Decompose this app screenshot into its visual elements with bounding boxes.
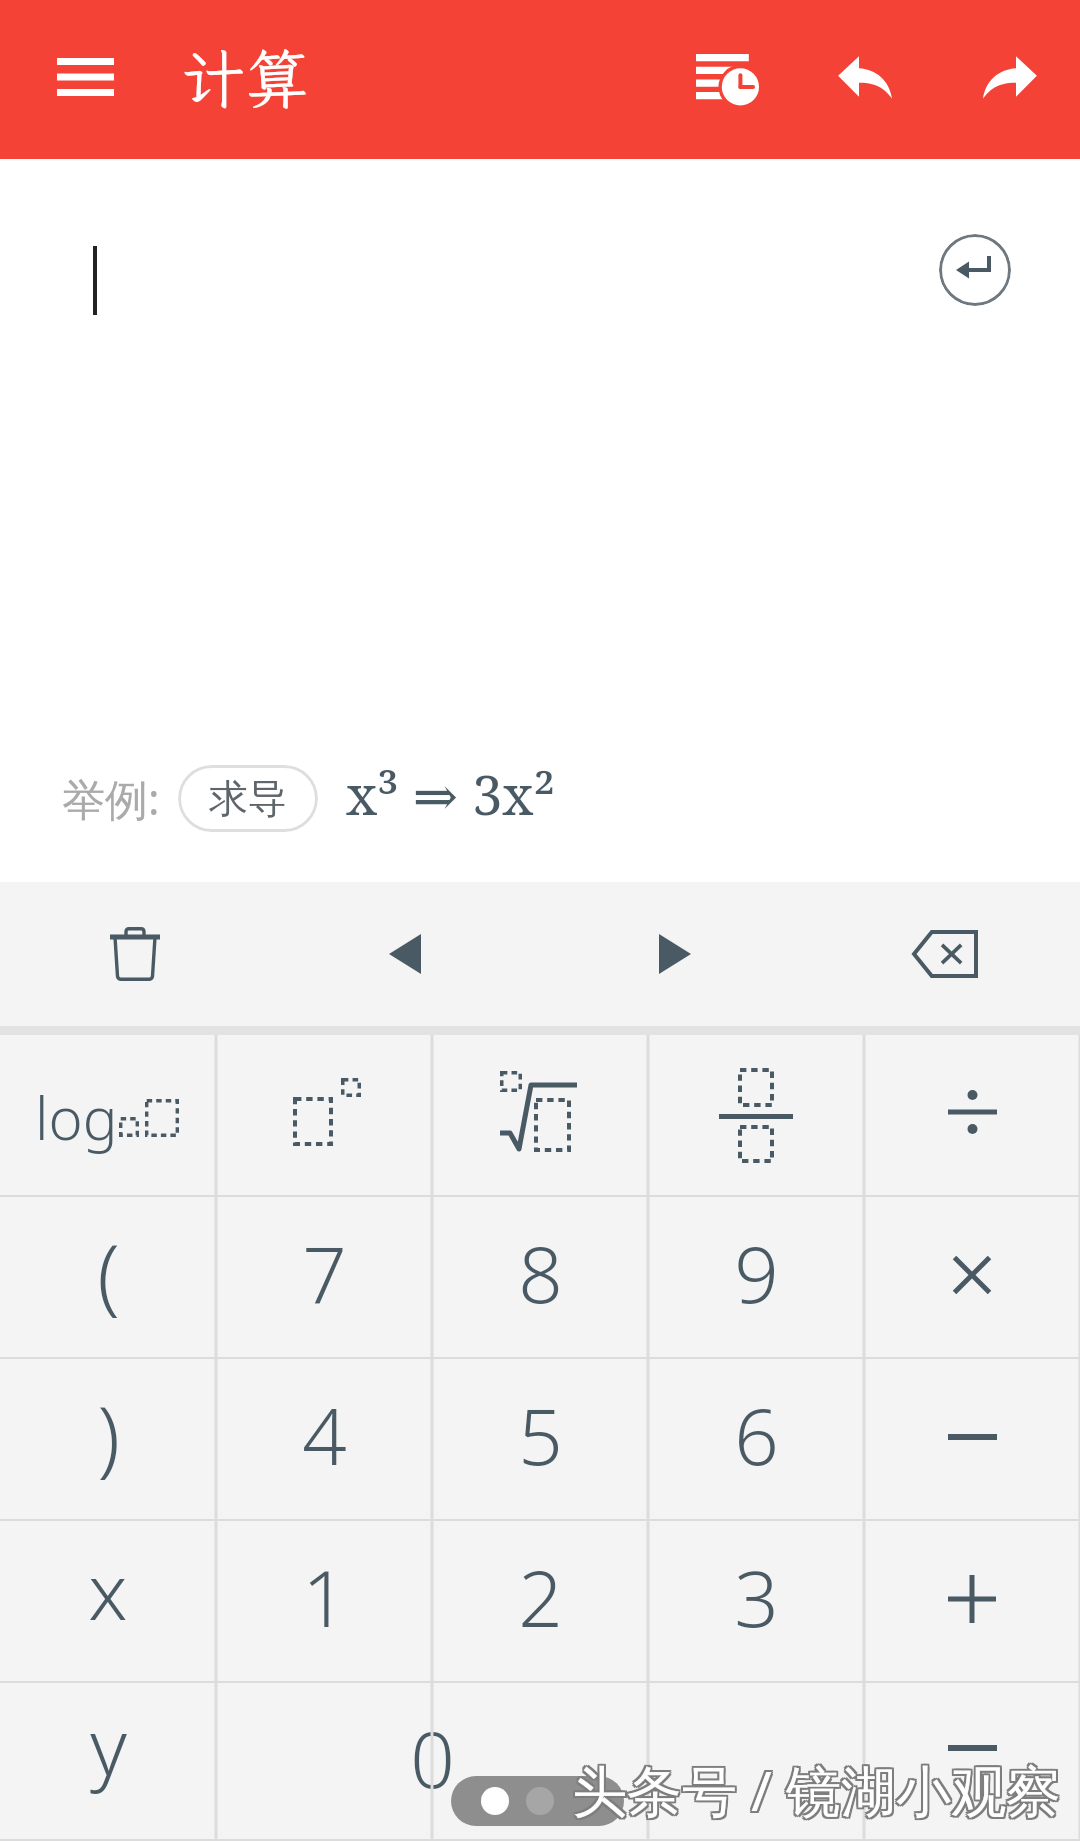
staticText: 头条号 / 镜湖小观察 bbox=[574, 1750, 1064, 1825]
staticText: 计算 bbox=[181, 36, 309, 120]
button[interactable] bbox=[864, 1359, 1080, 1519]
staticText: 求导 bbox=[209, 774, 287, 823]
button[interactable]: Redo bbox=[964, 36, 1056, 122]
staticText: log bbox=[35, 1078, 118, 1157]
button[interactable] bbox=[648, 1035, 864, 1195]
staticText: y bbox=[90, 1693, 127, 1799]
staticText: 头条号 / 镜湖小观察 bbox=[570, 1754, 1060, 1829]
staticText: 9 bbox=[734, 1220, 779, 1326]
button[interactable]: 4 bbox=[216, 1359, 432, 1519]
staticText: 1 bbox=[302, 1544, 347, 1650]
button[interactable]: 5 bbox=[432, 1359, 648, 1519]
button[interactable]: Undo bbox=[818, 36, 910, 122]
button[interactable]: 6 bbox=[648, 1359, 864, 1519]
staticText: 4 bbox=[302, 1382, 347, 1488]
staticText: 头条号 / 镜湖小观察 bbox=[572, 1750, 1062, 1825]
button[interactable]: 8 bbox=[432, 1197, 648, 1357]
button[interactable]: ( bbox=[0, 1197, 216, 1357]
staticText: 2 bbox=[518, 1544, 563, 1650]
button[interactable] bbox=[864, 1683, 1080, 1841]
staticText: 7 bbox=[302, 1220, 347, 1326]
button[interactable]: x bbox=[0, 1521, 216, 1681]
button[interactable]: ) bbox=[0, 1359, 216, 1519]
staticText: 举例: bbox=[62, 769, 160, 828]
staticText: 3 bbox=[734, 1544, 779, 1650]
button[interactable] bbox=[864, 1521, 1080, 1681]
button[interactable] bbox=[864, 1197, 1080, 1357]
button[interactable]: 1 bbox=[216, 1521, 432, 1681]
staticText: ( bbox=[97, 1217, 120, 1329]
button[interactable]: Clear bbox=[0, 882, 270, 1026]
button[interactable]: 0 bbox=[216, 1683, 648, 1841]
button[interactable]: 9 bbox=[648, 1197, 864, 1357]
staticText: ) bbox=[97, 1379, 120, 1491]
staticText: x bbox=[88, 1537, 128, 1643]
button[interactable]: Enter bbox=[939, 234, 1011, 306]
staticText: 头条号 / 镜湖小观察 bbox=[574, 1752, 1064, 1827]
button[interactable]: Cursor right bbox=[540, 882, 810, 1026]
staticText: 头条号 / 镜湖小观察 bbox=[570, 1752, 1060, 1827]
staticText: 头条号 / 镜湖小观察 bbox=[574, 1754, 1064, 1829]
button[interactable]: Cursor left bbox=[270, 882, 540, 1026]
button[interactable]: 求导 bbox=[178, 765, 318, 832]
button[interactable]: 2 bbox=[432, 1521, 648, 1681]
button[interactable]: log bbox=[0, 1035, 216, 1195]
button[interactable]: 3 bbox=[648, 1521, 864, 1681]
button[interactable]: y bbox=[0, 1683, 216, 1841]
staticText: 5 bbox=[518, 1382, 563, 1488]
button[interactable]: 7 bbox=[216, 1197, 432, 1357]
staticText: 8 bbox=[518, 1220, 563, 1326]
staticText: 0 bbox=[410, 1705, 455, 1811]
button[interactable]: Menu bbox=[37, 35, 133, 119]
staticText: 头条号 / 镜湖小观察 bbox=[572, 1752, 1062, 1827]
button[interactable] bbox=[864, 1035, 1080, 1195]
staticText: x³ ⇒ 3x² bbox=[346, 757, 556, 831]
staticText: . bbox=[746, 1729, 766, 1835]
button[interactable] bbox=[432, 1035, 648, 1195]
button[interactable]: . bbox=[648, 1683, 864, 1841]
button[interactable]: Backspace bbox=[810, 882, 1080, 1026]
button[interactable]: History bbox=[680, 36, 772, 122]
staticText: 头条号 / 镜湖小观察 bbox=[572, 1754, 1062, 1829]
staticText: 6 bbox=[734, 1382, 779, 1488]
staticText: 头条号 / 镜湖小观察 bbox=[570, 1750, 1060, 1825]
button[interactable] bbox=[216, 1035, 432, 1195]
